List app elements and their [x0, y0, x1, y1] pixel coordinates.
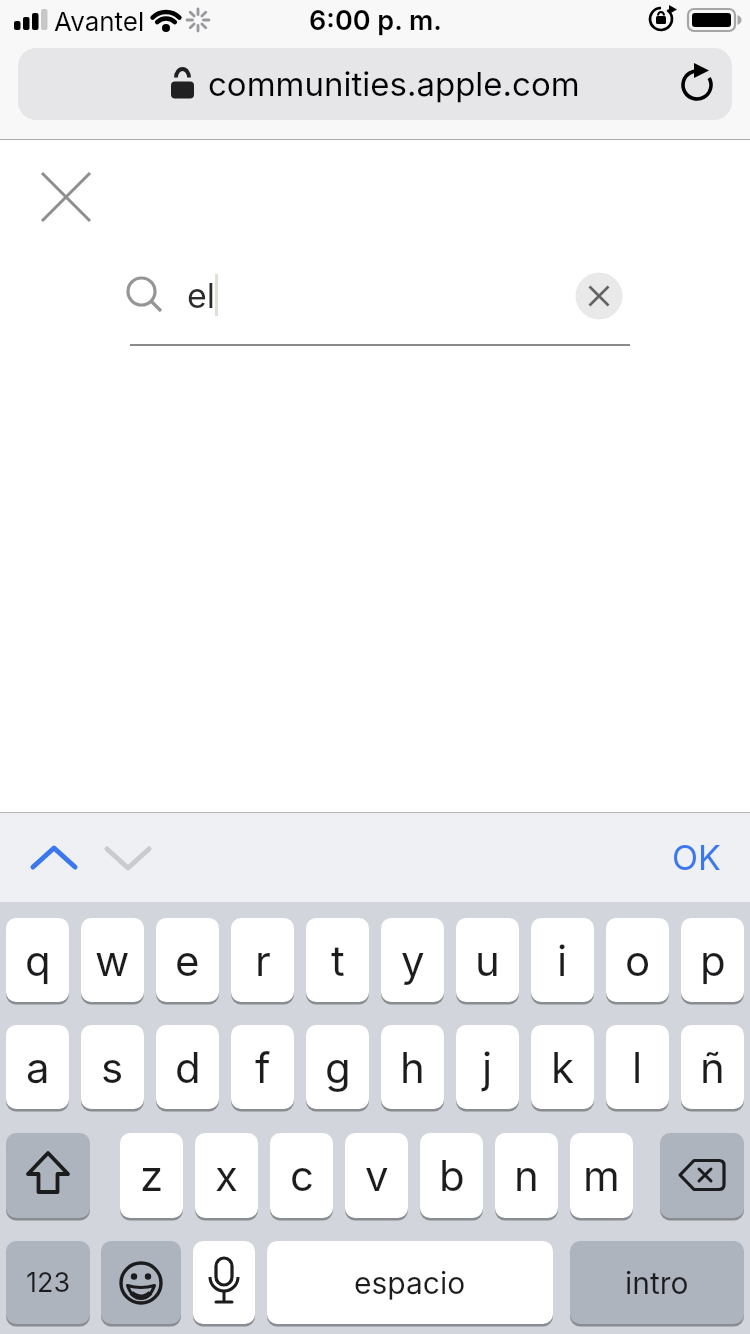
button[interactable]	[6, 1133, 90, 1218]
staticText: r	[255, 935, 271, 986]
button[interactable]: n	[495, 1133, 558, 1218]
button[interactable]: g	[306, 1025, 369, 1109]
staticText: OK	[672, 837, 721, 878]
staticText: 123	[26, 1266, 71, 1299]
button[interactable]: d	[156, 1025, 219, 1109]
staticText: z	[140, 1150, 164, 1201]
button[interactable]: 123	[6, 1241, 90, 1324]
button[interactable]: o	[606, 918, 669, 1002]
staticText: i	[557, 935, 568, 986]
button[interactable]	[101, 1241, 181, 1324]
staticText: y	[401, 935, 425, 986]
button[interactable]	[38, 169, 94, 225]
button[interactable]: s	[81, 1025, 144, 1109]
staticText: q	[25, 935, 51, 986]
staticText: intro	[625, 1265, 689, 1301]
button[interactable]: u	[456, 918, 519, 1002]
button[interactable]: ñ	[681, 1025, 744, 1109]
staticText: x	[215, 1150, 238, 1201]
staticText: w	[95, 935, 130, 986]
button[interactable]: q	[6, 918, 69, 1002]
button[interactable]: z	[120, 1133, 183, 1218]
staticText: e	[175, 935, 200, 986]
button[interactable]: h	[381, 1025, 444, 1109]
staticText: b	[439, 1150, 465, 1201]
staticText: g	[325, 1042, 351, 1093]
button[interactable]: k	[531, 1025, 594, 1109]
button[interactable]: p	[681, 918, 744, 1002]
staticText: espacio	[354, 1265, 466, 1301]
button[interactable]: t	[306, 918, 369, 1002]
button[interactable]: i	[531, 918, 594, 1002]
staticText: el	[187, 275, 216, 316]
staticText: s	[101, 1042, 124, 1093]
button[interactable]	[30, 840, 78, 876]
button[interactable]: e	[156, 918, 219, 1002]
staticText: m	[583, 1150, 620, 1201]
staticText: k	[551, 1042, 575, 1093]
button[interactable]: OK	[651, 822, 741, 892]
staticText: c	[290, 1150, 314, 1201]
staticText: j	[482, 1042, 493, 1093]
button[interactable]: m	[570, 1133, 633, 1218]
button[interactable]	[576, 273, 622, 319]
staticText: u	[475, 935, 500, 986]
staticText: Avantel	[54, 6, 145, 37]
button[interactable]: x	[195, 1133, 258, 1218]
button[interactable]: y	[381, 918, 444, 1002]
staticText: h	[400, 1042, 425, 1093]
button[interactable]	[660, 1133, 744, 1218]
button[interactable]	[104, 840, 152, 876]
button[interactable]: intro	[570, 1241, 744, 1324]
staticText: n	[514, 1150, 539, 1201]
button[interactable]: v	[345, 1133, 408, 1218]
button[interactable]: communities.apple.com	[18, 48, 732, 120]
button[interactable]: r	[231, 918, 294, 1002]
button[interactable]: espacio	[267, 1241, 553, 1324]
staticText: communities.apple.com	[208, 64, 580, 104]
button[interactable]: f	[231, 1025, 294, 1109]
staticText: l	[632, 1042, 643, 1093]
staticText: v	[365, 1150, 389, 1201]
staticText: o	[625, 935, 651, 986]
staticText: t	[331, 935, 345, 986]
staticText: ñ	[700, 1042, 725, 1093]
button[interactable]	[193, 1241, 255, 1324]
staticText: d	[175, 1042, 201, 1093]
button[interactable]: w	[81, 918, 144, 1002]
button[interactable]: a	[6, 1025, 69, 1109]
staticText: a	[26, 1042, 50, 1093]
staticText: f	[255, 1042, 271, 1093]
button[interactable]: b	[420, 1133, 483, 1218]
button[interactable]: l	[606, 1025, 669, 1109]
button[interactable]: j	[456, 1025, 519, 1109]
staticText: p	[700, 935, 726, 986]
button[interactable]: c	[270, 1133, 333, 1218]
staticText: 6:00 p. m.	[309, 4, 442, 37]
